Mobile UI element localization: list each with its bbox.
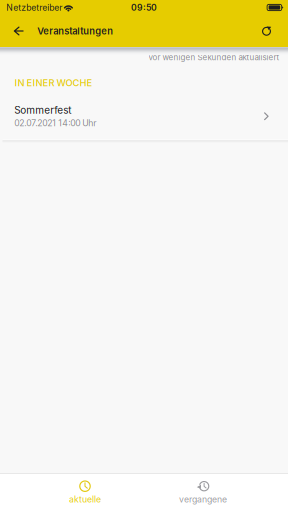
staticText: Veranstaltungen bbox=[37, 25, 113, 37]
staticText: vor wenigen Sekunden aktualisiert bbox=[148, 52, 279, 62]
button[interactable]: aktuelle bbox=[26, 473, 144, 512]
button[interactable]: Aktualisieren bbox=[254, 17, 288, 45]
staticText: Netzbetreiber bbox=[6, 2, 62, 13]
button[interactable]: Veranstaltungen bbox=[27, 17, 119, 45]
staticText: aktuelle bbox=[69, 494, 101, 505]
staticText: IN EINER WOCHE bbox=[15, 77, 93, 89]
staticText: vergangene bbox=[179, 494, 227, 505]
staticText: Sommerfest bbox=[14, 104, 71, 116]
button[interactable]: vergangene bbox=[144, 473, 262, 512]
staticText: 02.07.2021 14:00 Uhr bbox=[14, 118, 96, 128]
staticText: 09:50 bbox=[131, 2, 157, 13]
button[interactable]: Zurück bbox=[0, 17, 27, 45]
button[interactable]: Sommerfest bbox=[0, 96, 288, 139]
